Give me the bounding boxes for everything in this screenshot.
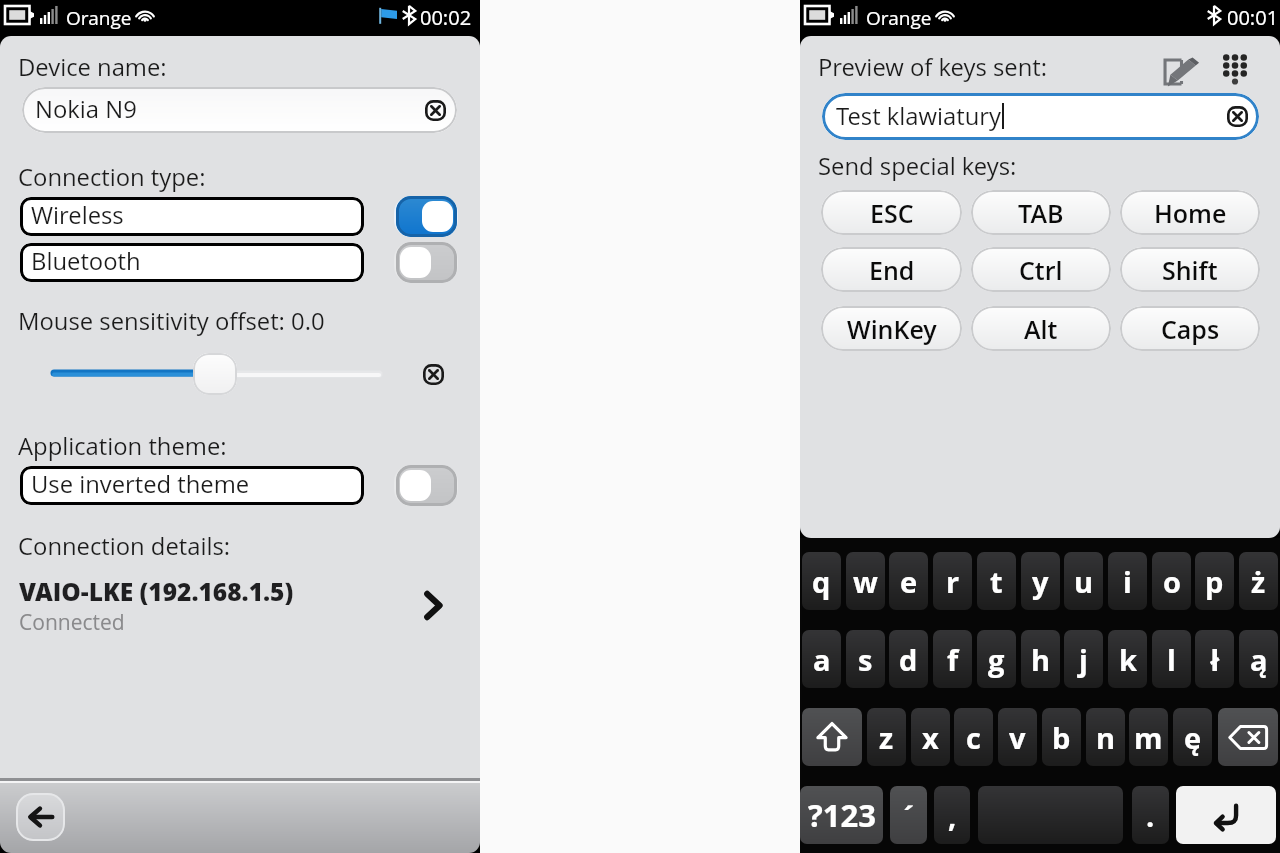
button[interactable]: z bbox=[867, 708, 906, 766]
button[interactable]: ´ bbox=[890, 786, 927, 844]
staticText: l bbox=[1167, 640, 1176, 679]
staticText: Send special keys: bbox=[818, 150, 1017, 182]
staticText: r bbox=[946, 562, 960, 601]
staticText: x bbox=[922, 718, 939, 757]
staticText: Orange bbox=[66, 5, 132, 31]
button[interactable]: a bbox=[802, 630, 841, 688]
button[interactable]: Bluetooth bbox=[20, 243, 364, 282]
button[interactable]: Off bbox=[393, 465, 459, 506]
button[interactable]: w bbox=[846, 552, 885, 610]
staticText: i bbox=[1123, 562, 1132, 601]
staticText: s bbox=[858, 640, 873, 679]
button[interactable]: Enter bbox=[1176, 786, 1276, 844]
button[interactable]: k bbox=[1108, 630, 1147, 688]
button[interactable]: ż bbox=[1239, 552, 1278, 610]
button[interactable]: r bbox=[933, 552, 972, 610]
button[interactable]: Ctrl bbox=[971, 247, 1111, 292]
button[interactable]: Caps bbox=[1120, 306, 1260, 351]
button[interactable]: VAIO-LKE (192.168.1.5) bbox=[0, 571, 480, 631]
staticText: ą bbox=[1250, 640, 1268, 679]
staticText: y bbox=[1032, 562, 1049, 601]
staticText: Connected bbox=[19, 608, 125, 635]
staticText: h bbox=[1031, 640, 1051, 679]
staticText: Bluetooth bbox=[31, 245, 141, 277]
staticText: Home bbox=[1154, 196, 1227, 230]
button[interactable]: Sensitivity slider bbox=[193, 353, 237, 395]
button[interactable]: ł bbox=[1195, 630, 1234, 688]
staticText: ?123 bbox=[808, 794, 876, 836]
button[interactable]: h bbox=[1021, 630, 1060, 688]
staticText: Ctrl bbox=[1019, 253, 1063, 287]
staticText: ł bbox=[1210, 640, 1220, 679]
staticText: d bbox=[899, 640, 918, 679]
button[interactable]: Show keypad bbox=[1215, 50, 1255, 92]
button[interactable]: Off bbox=[393, 242, 459, 283]
staticText: TAB bbox=[1018, 196, 1064, 230]
staticText: b bbox=[1052, 718, 1071, 757]
button[interactable]: x bbox=[911, 708, 950, 766]
button[interactable]: Reset sensitivity bbox=[423, 364, 444, 385]
button[interactable]: j bbox=[1064, 630, 1103, 688]
button[interactable]: Clear device name bbox=[425, 100, 446, 121]
staticText: Shift bbox=[1162, 253, 1218, 287]
button[interactable]: Shift bbox=[1120, 247, 1260, 292]
button[interactable]: Clear text bbox=[1227, 106, 1248, 127]
staticText: VAIO-LKE (192.168.1.5) bbox=[19, 575, 294, 608]
button[interactable]: Nokia N9 bbox=[22, 87, 457, 133]
button[interactable]: . bbox=[1132, 786, 1169, 844]
staticText: u bbox=[1074, 562, 1094, 601]
button[interactable]: WinKey bbox=[821, 306, 962, 351]
button[interactable]: y bbox=[1021, 552, 1060, 610]
button[interactable]: Back bbox=[16, 793, 65, 841]
staticText: a bbox=[813, 640, 831, 679]
button[interactable]: v bbox=[998, 708, 1037, 766]
button[interactable] bbox=[978, 786, 1123, 844]
button[interactable]: Edit text bbox=[1157, 54, 1205, 90]
button[interactable]: d bbox=[889, 630, 928, 688]
button[interactable]: p bbox=[1195, 552, 1234, 610]
button[interactable]: o bbox=[1152, 552, 1191, 610]
button[interactable]: g bbox=[977, 630, 1016, 688]
staticText: 00:01 bbox=[1227, 4, 1279, 31]
button[interactable]: t bbox=[977, 552, 1016, 610]
button[interactable]: n bbox=[1086, 708, 1125, 766]
button[interactable]: c bbox=[954, 708, 993, 766]
button[interactable]: Use inverted theme bbox=[20, 466, 364, 505]
button[interactable]: On bbox=[393, 196, 459, 237]
button[interactable]: Backspace bbox=[1218, 708, 1278, 766]
staticText: Use inverted theme bbox=[31, 468, 250, 500]
staticText: Orange bbox=[866, 5, 932, 31]
staticText: Wireless bbox=[31, 199, 124, 231]
button[interactable]: b bbox=[1042, 708, 1081, 766]
button[interactable]: Home bbox=[1120, 190, 1260, 235]
button[interactable]: End bbox=[821, 247, 962, 292]
button[interactable]: ?123 bbox=[800, 786, 883, 844]
button[interactable]: TAB bbox=[971, 190, 1111, 235]
staticText: WinKey bbox=[847, 312, 937, 346]
button[interactable]: m bbox=[1129, 708, 1168, 766]
staticText: c bbox=[966, 718, 981, 757]
staticText: Application theme: bbox=[18, 430, 227, 462]
button[interactable]: f bbox=[933, 630, 972, 688]
button[interactable]: s bbox=[846, 630, 885, 688]
button[interactable]: l bbox=[1152, 630, 1191, 688]
staticText: ż bbox=[1251, 562, 1266, 601]
button[interactable]: ę bbox=[1173, 708, 1212, 766]
button[interactable]: ą bbox=[1239, 630, 1278, 688]
staticText: . bbox=[1146, 796, 1155, 835]
staticText: Caps bbox=[1161, 312, 1220, 346]
button[interactable]: Wireless bbox=[20, 197, 364, 236]
button[interactable]: , bbox=[934, 786, 970, 844]
staticText: p bbox=[1205, 562, 1224, 601]
button[interactable]: q bbox=[802, 552, 841, 610]
button[interactable]: Test klawiatury bbox=[822, 93, 1259, 140]
button[interactable]: ESC bbox=[821, 190, 962, 235]
button[interactable]: Shift bbox=[802, 708, 862, 766]
staticText: Mouse sensitivity offset: 0.0 bbox=[18, 305, 325, 337]
staticText: , bbox=[948, 796, 957, 835]
button[interactable]: i bbox=[1108, 552, 1147, 610]
staticText: Test klawiatury bbox=[836, 100, 1002, 132]
button[interactable]: u bbox=[1064, 552, 1103, 610]
button[interactable]: Alt bbox=[971, 306, 1111, 351]
button[interactable]: e bbox=[889, 552, 928, 610]
